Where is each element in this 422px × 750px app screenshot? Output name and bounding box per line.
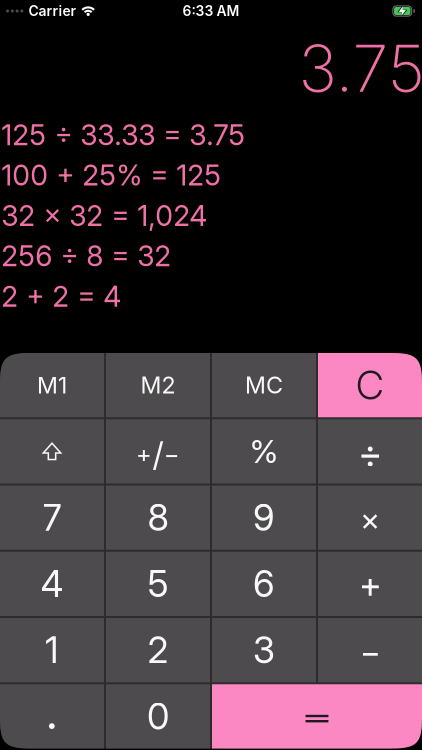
staticText: −: [359, 631, 380, 672]
button[interactable]: 6: [212, 552, 316, 616]
button[interactable]: 3: [212, 618, 316, 682]
staticText: ×: [360, 500, 380, 538]
staticText: C: [356, 361, 384, 409]
staticText: .: [45, 686, 58, 739]
button[interactable]: 7: [0, 485, 104, 550]
staticText: 9: [253, 496, 275, 540]
button[interactable]: −: [318, 618, 422, 682]
button[interactable]: [0, 419, 104, 483]
staticText: 256 ÷ 8 = 32: [1, 239, 171, 273]
button[interactable]: 8: [106, 485, 210, 550]
button[interactable]: 0: [106, 684, 210, 748]
button[interactable]: 2: [106, 618, 210, 682]
button[interactable]: +: [106, 419, 210, 483]
staticText: 4: [40, 562, 63, 606]
button[interactable]: 4: [0, 552, 104, 616]
staticText: 1: [45, 628, 59, 672]
button[interactable]: .: [0, 684, 104, 748]
button[interactable]: %: [212, 419, 316, 483]
staticText: %: [249, 432, 278, 471]
staticText: 32 × 32 = 1,024: [1, 198, 207, 233]
staticText: +: [136, 440, 152, 469]
staticText: 3: [253, 628, 275, 672]
staticText: 6: [253, 562, 275, 606]
staticText: /: [152, 435, 163, 474]
button[interactable]: M2: [106, 353, 210, 417]
button[interactable]: ÷: [318, 419, 422, 483]
staticText: 100 + 25% = 125: [1, 158, 221, 192]
staticText: M2: [140, 371, 175, 399]
staticText: 0: [147, 694, 169, 738]
button[interactable]: C: [318, 353, 422, 417]
button[interactable]: 9: [212, 485, 316, 550]
staticText: −: [164, 440, 180, 469]
staticText: 2: [147, 628, 168, 672]
staticText: 8: [147, 496, 168, 540]
staticText: M1: [37, 371, 67, 399]
staticText: 3.75: [299, 29, 422, 107]
staticText: 6:33 AM: [182, 3, 239, 19]
button[interactable]: 1: [0, 618, 104, 682]
button[interactable]: MC: [212, 353, 316, 417]
button[interactable]: [212, 684, 422, 748]
staticText: 7: [42, 496, 61, 540]
staticText: 125 ÷ 33.33 = 3.75: [1, 118, 245, 152]
button[interactable]: 5: [106, 552, 210, 616]
button[interactable]: +: [318, 552, 422, 616]
button[interactable]: M1: [0, 353, 104, 417]
staticText: ÷: [358, 430, 382, 477]
staticText: 5: [147, 562, 168, 606]
button[interactable]: ×: [318, 485, 422, 550]
staticText: Carrier: [28, 3, 76, 19]
staticText: +: [358, 563, 381, 607]
staticText: MC: [245, 371, 283, 399]
staticText: 2 + 2 = 4: [1, 279, 121, 314]
